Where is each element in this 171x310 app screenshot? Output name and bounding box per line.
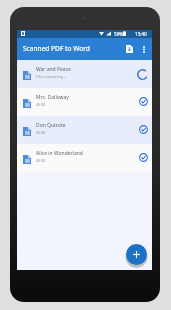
button[interactable]: Alice in Wonderland [17, 144, 152, 172]
staticText: 59% [114, 31, 124, 37]
staticText: 46 KB [36, 158, 46, 163]
button[interactable]: Open document [119, 38, 139, 60]
button[interactable]: More options [136, 38, 152, 60]
staticText: 46 KB [36, 130, 46, 135]
staticText: War and Peace [36, 66, 71, 73]
staticText: Scanned PDF to Word [23, 44, 90, 53]
button[interactable]: Mrs. Dalloway [17, 88, 152, 116]
staticText: File is converting ... [36, 74, 67, 79]
staticText: 46 KB [36, 102, 46, 107]
button[interactable]: Don Quixote [17, 116, 152, 144]
button[interactable]: War and Peace [17, 60, 152, 88]
staticText: Don Quixote [36, 122, 66, 129]
staticText: Alice in Wonderland [36, 150, 83, 157]
button[interactable]: Add file [126, 244, 147, 265]
staticText: Mrs. Dalloway [36, 94, 69, 101]
staticText: 15:40 [135, 31, 147, 37]
